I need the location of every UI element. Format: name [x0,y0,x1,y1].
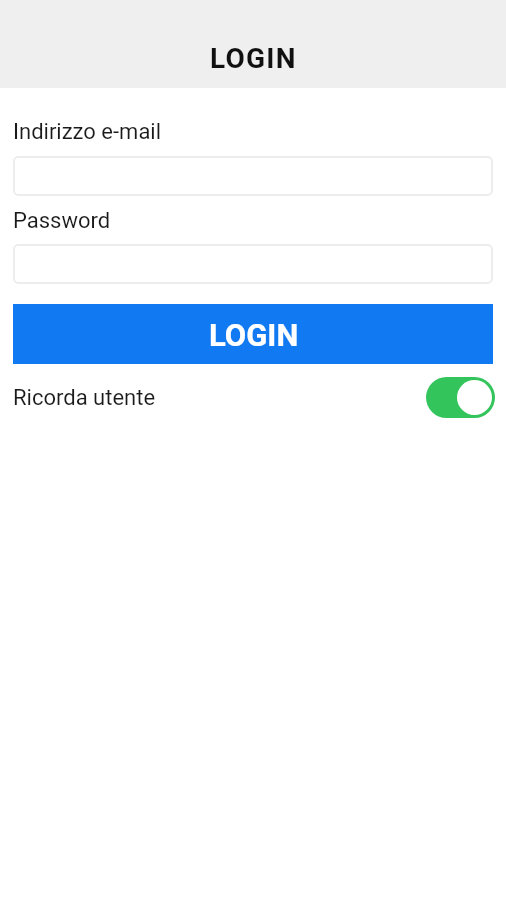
staticText: Indirizzo e-mail [13,119,162,145]
button[interactable]: Ricorda utente [426,377,495,418]
staticText: LOGIN [209,317,299,353]
button[interactable]: Indirizzo e-mail [13,156,493,196]
staticText: Password [13,208,111,234]
staticText: LOGIN [210,42,297,75]
staticText: Ricorda utente [13,385,156,411]
button[interactable]: LOGIN [13,304,493,364]
button[interactable]: Password [13,244,493,284]
